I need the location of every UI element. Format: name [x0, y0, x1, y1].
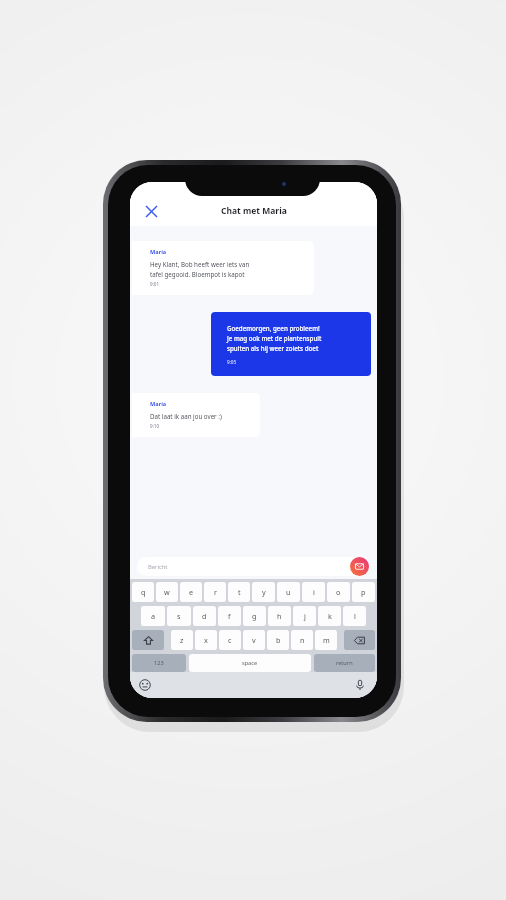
button[interactable]: x	[195, 630, 217, 650]
button[interactable]: a	[141, 606, 165, 626]
button[interactable]: Goedemorgen, geen probleem!	[211, 312, 371, 376]
staticText: a	[151, 611, 156, 621]
staticText: 9:10	[150, 423, 160, 429]
button[interactable]: p	[352, 582, 375, 602]
staticText: Chat met Maria	[221, 205, 287, 217]
staticText: n	[300, 635, 305, 645]
button[interactable]: l	[343, 606, 366, 626]
button[interactable]: w	[156, 582, 178, 602]
staticText: u	[286, 587, 291, 597]
button[interactable]: y	[252, 582, 275, 602]
staticText: Maria	[150, 400, 167, 408]
staticText: i	[313, 587, 315, 597]
staticText: b	[276, 635, 281, 645]
button[interactable]: Dictate	[352, 677, 368, 693]
staticText: j	[304, 611, 306, 621]
staticText: l	[354, 611, 356, 621]
button[interactable]: d	[193, 606, 216, 626]
button[interactable]: Backspace	[344, 630, 375, 650]
button[interactable]: j	[293, 606, 316, 626]
staticText: f	[228, 611, 231, 621]
button[interactable]: t	[228, 582, 250, 602]
button[interactable]: i	[302, 582, 325, 602]
button[interactable]: Send	[350, 557, 369, 576]
staticText: k	[328, 611, 332, 621]
button[interactable]: u	[277, 582, 300, 602]
button[interactable]: e	[180, 582, 202, 602]
staticText: t	[238, 587, 241, 597]
staticText: Hey Klant, Bob heeft weer iets van	[150, 260, 250, 268]
staticText: 9:05	[227, 359, 237, 365]
staticText: Je mag ook met de plantenspuit	[227, 334, 322, 342]
button[interactable]: return	[314, 654, 375, 672]
button[interactable]: s	[167, 606, 191, 626]
button[interactable]: m	[315, 630, 337, 650]
button[interactable]: Shift	[132, 630, 164, 650]
staticText: w	[164, 587, 170, 597]
staticText: Maria	[150, 248, 167, 256]
staticText: m	[323, 635, 330, 645]
staticText: v	[252, 635, 256, 645]
staticText: q	[141, 587, 146, 597]
button[interactable]: 123	[132, 654, 186, 672]
staticText: z	[180, 635, 184, 645]
staticText: g	[252, 611, 257, 621]
button[interactable]: v	[243, 630, 265, 650]
button[interactable]: q	[132, 582, 154, 602]
button[interactable]: z	[171, 630, 193, 650]
button[interactable]: Emoji	[137, 677, 153, 693]
button[interactable]: Maria	[132, 393, 260, 437]
staticText: r	[214, 587, 217, 597]
staticText: Goedemorgen, geen probleem!	[227, 324, 320, 332]
staticText: s	[177, 611, 181, 621]
staticText: h	[277, 611, 282, 621]
button[interactable]: space	[189, 654, 311, 672]
staticText: x	[204, 635, 208, 645]
button[interactable]: Close	[138, 198, 164, 224]
staticText: tafel gegooid. Bloempot is kapot	[150, 270, 245, 278]
button[interactable]: k	[318, 606, 341, 626]
button[interactable]: n	[291, 630, 313, 650]
staticText: c	[228, 635, 232, 645]
button[interactable]: o	[327, 582, 350, 602]
button[interactable]: f	[218, 606, 241, 626]
button[interactable]: Maria	[132, 241, 314, 295]
button[interactable]: Bericht	[137, 557, 370, 576]
staticText: e	[189, 587, 194, 597]
staticText: spuiten als hij weer zoiets doet	[227, 344, 319, 352]
button[interactable]: r	[204, 582, 226, 602]
staticText: Bericht	[148, 563, 168, 571]
staticText: y	[262, 587, 266, 597]
button[interactable]: c	[219, 630, 241, 650]
button[interactable]: g	[243, 606, 266, 626]
button[interactable]: b	[267, 630, 289, 650]
staticText: Dat laat ik aan jou over :)	[150, 412, 222, 420]
staticText: p	[361, 587, 366, 597]
button[interactable]: h	[268, 606, 291, 626]
staticText: o	[336, 587, 341, 597]
staticText: 123	[154, 659, 164, 667]
staticText: return	[336, 659, 353, 667]
staticText: 9:01	[150, 281, 160, 287]
staticText: space	[242, 659, 258, 667]
staticText: d	[202, 611, 207, 621]
